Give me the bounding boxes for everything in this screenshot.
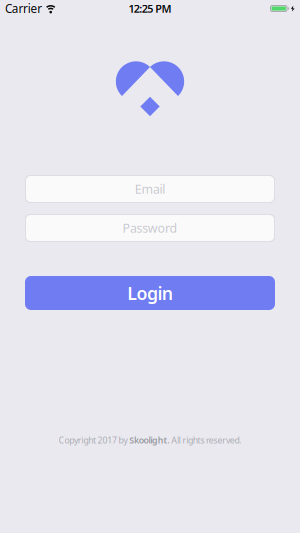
button[interactable]: Password	[25, 214, 275, 242]
staticText: Email	[135, 181, 165, 197]
staticText: Copyright 2017 by	[59, 434, 129, 446]
staticText: All rights reserved.	[169, 434, 241, 446]
staticText: Carrier	[5, 0, 42, 16]
staticText: Password	[122, 220, 178, 236]
button[interactable]: Email	[25, 175, 275, 203]
staticText: Skoolight.	[129, 434, 169, 446]
button[interactable]: Login	[25, 276, 275, 310]
staticText: 12:25 PM	[128, 1, 172, 16]
staticText: Login	[127, 281, 173, 305]
